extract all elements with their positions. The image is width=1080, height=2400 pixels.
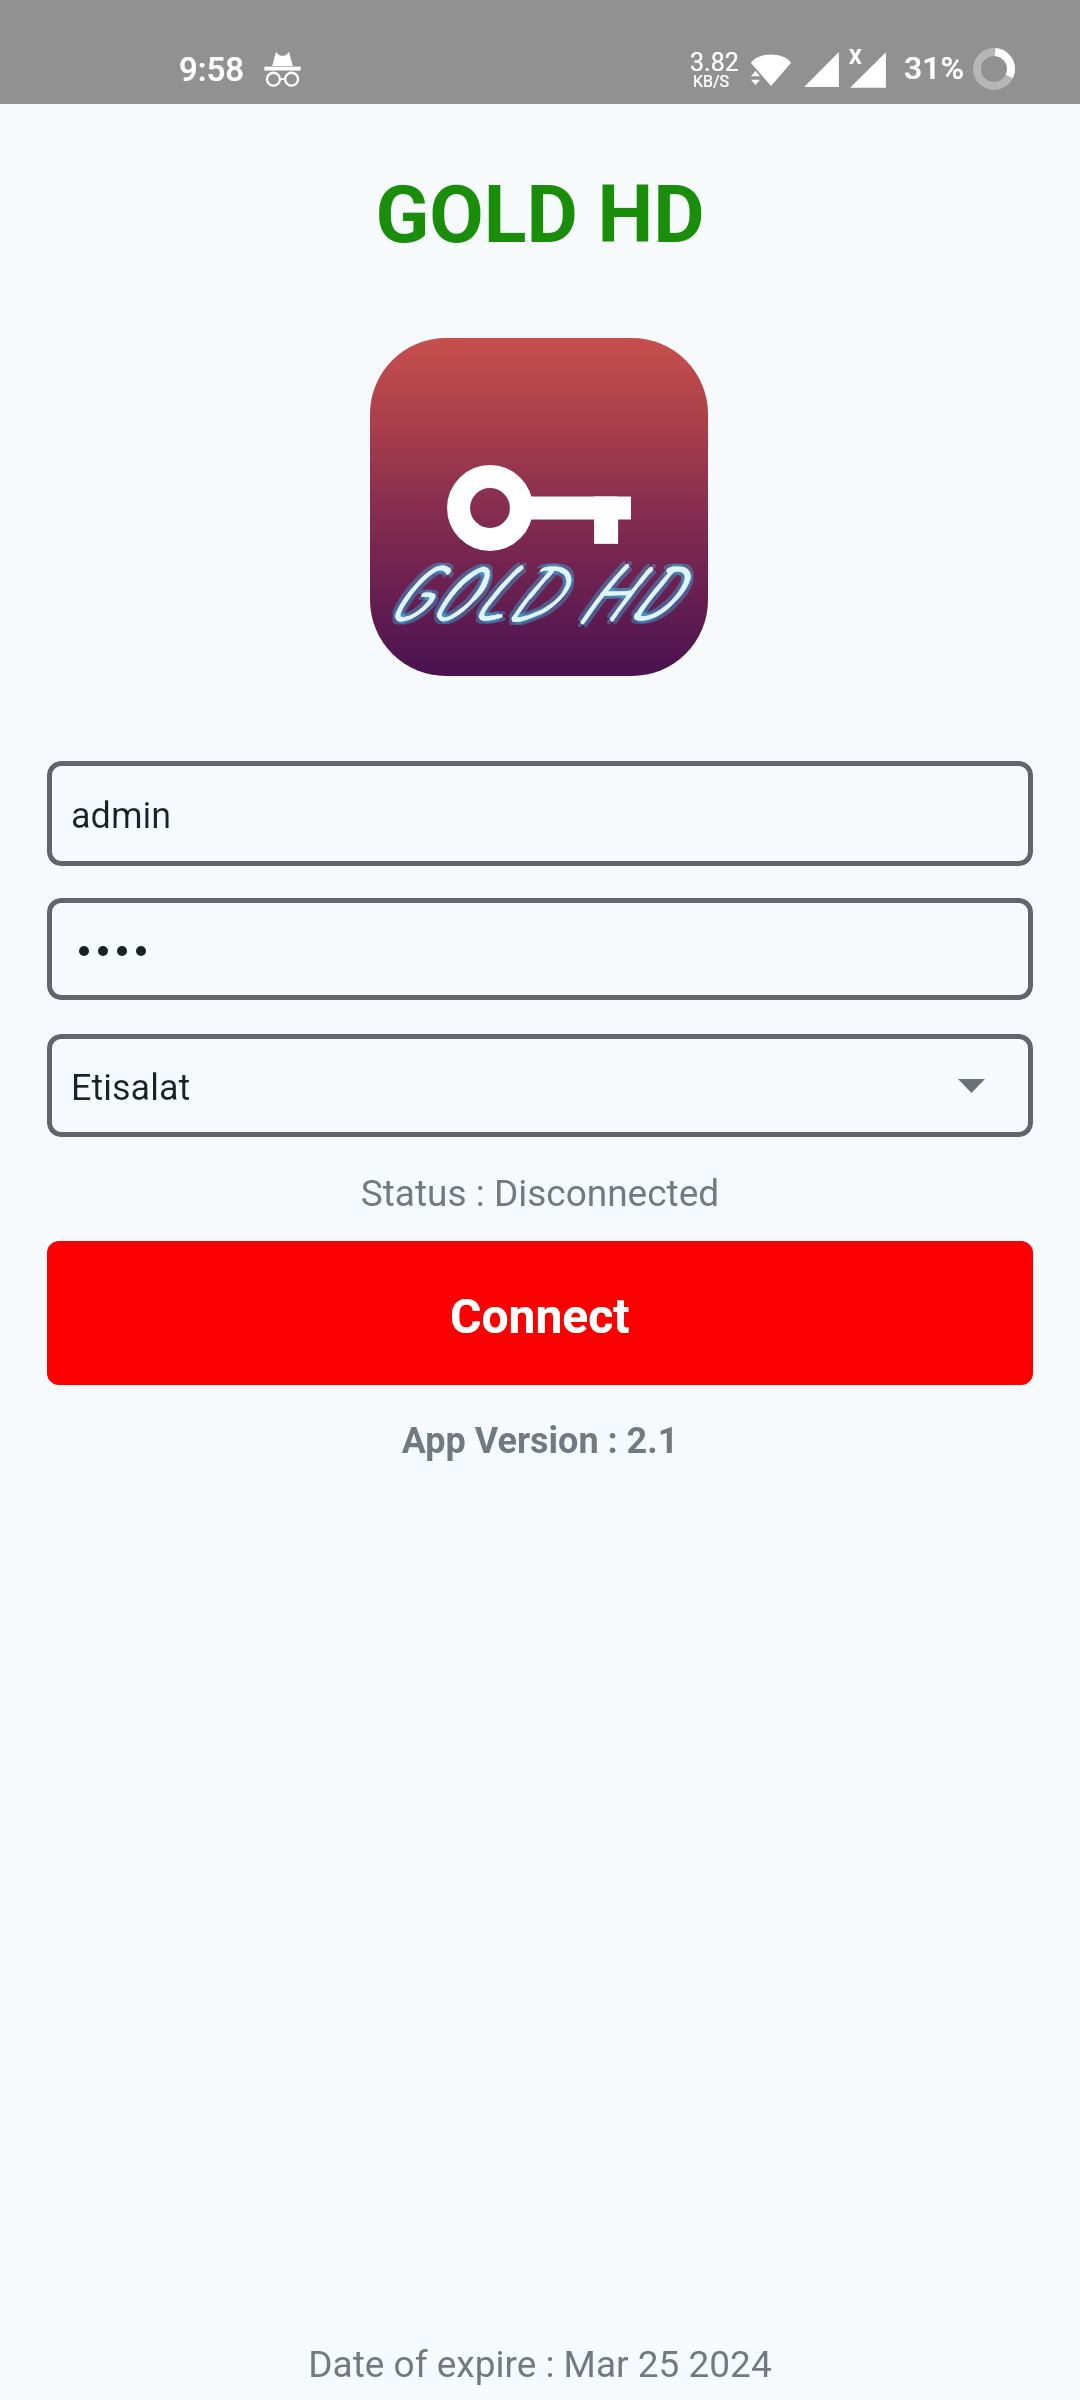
other: Mobile signal [803, 51, 840, 88]
staticText: Status : Disconnected [0, 1172, 1080, 1215]
staticText: X [849, 45, 862, 68]
staticText: Connect [450, 1288, 630, 1344]
staticText: Etisalat [71, 1067, 191, 1109]
staticText: 3.82 [690, 48, 739, 77]
other: No SIM [849, 51, 887, 89]
staticText: GOLD HD [388, 541, 676, 638]
staticText: KB/S [693, 72, 730, 91]
button[interactable]: Etisalat [47, 1034, 1033, 1137]
staticText: 31% [904, 49, 964, 87]
staticText: 9:58 [179, 50, 244, 89]
button[interactable]: admin [47, 761, 1033, 866]
staticText: App Version : 2.1 [0, 1420, 1080, 1462]
staticText: Date of expire : Mar 25 2024 [0, 2343, 1080, 2386]
other: Battery 31 percent [973, 48, 1015, 90]
button[interactable]: Connect [47, 1241, 1033, 1385]
other: Open dropdown [958, 1079, 985, 1093]
other: Wi-Fi [751, 51, 791, 86]
staticText: GOLD HD [382, 541, 670, 638]
button[interactable] [47, 898, 1033, 1000]
staticText: GOLD HD [0, 169, 1080, 262]
staticText: admin [71, 795, 172, 837]
staticText: GOLD HD [388, 547, 676, 644]
other: Incognito mode [264, 50, 301, 87]
staticText: GOLD HD [382, 547, 670, 644]
staticText: GOLD HD [385, 544, 673, 641]
